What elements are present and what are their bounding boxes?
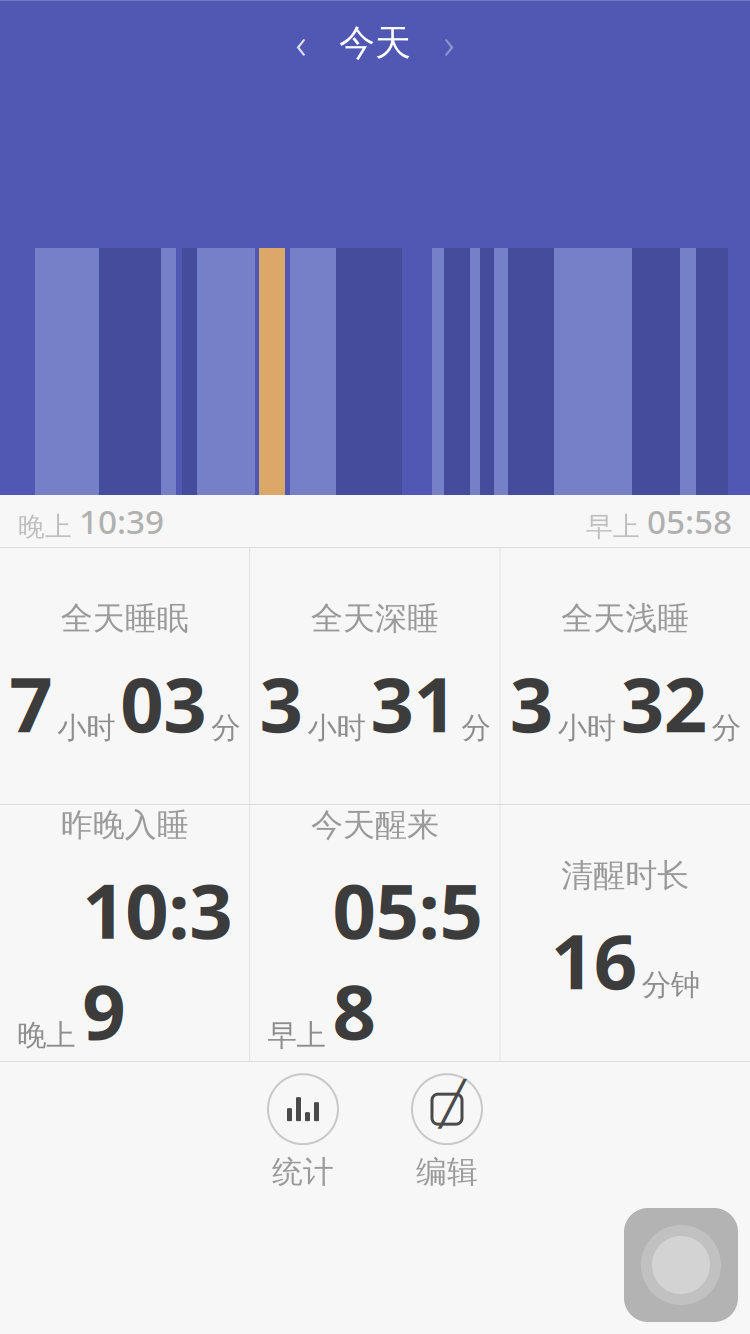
staticText: 05:58 xyxy=(332,859,482,1060)
staticText: 05:58 xyxy=(647,499,732,543)
staticText: ╱ xyxy=(439,1079,465,1128)
staticText: 全天深睡 xyxy=(311,599,439,638)
staticText: 分 xyxy=(211,710,240,746)
staticText: 晚上 xyxy=(18,510,72,543)
staticText: 今天 xyxy=(339,21,411,65)
button[interactable]: ╱ xyxy=(396,1068,498,1197)
staticText: 全天睡眠 xyxy=(61,599,189,638)
staticText: 清醒时长 xyxy=(561,856,689,895)
button[interactable]: Next day xyxy=(421,15,477,71)
staticText: › xyxy=(443,16,454,70)
staticText: 统计 xyxy=(272,1153,334,1191)
button[interactable]: 全天浅睡 xyxy=(501,548,750,804)
staticText: 昨晚入睡 xyxy=(61,805,189,845)
staticText: 10:39 xyxy=(82,859,232,1060)
staticText: 分 xyxy=(461,710,490,746)
staticText: 32 xyxy=(621,652,707,753)
staticText: 今天醒来 xyxy=(311,805,439,845)
staticText: 7 xyxy=(9,652,52,753)
staticText: 晚上 xyxy=(17,1017,75,1053)
staticText: 3 xyxy=(510,652,553,753)
staticText: 10:39 xyxy=(79,499,164,543)
staticText: 03 xyxy=(120,652,206,753)
staticText: 小时 xyxy=(57,710,115,746)
staticText: 早上 xyxy=(267,1017,325,1053)
staticText: 编辑 xyxy=(416,1153,478,1191)
staticText: 小时 xyxy=(558,710,616,746)
button[interactable]: AssistiveTouch xyxy=(624,1208,738,1322)
button[interactable]: Previous day xyxy=(273,15,329,71)
staticText: ‹ xyxy=(295,16,306,70)
staticText: 31 xyxy=(370,652,456,753)
staticText: 分钟 xyxy=(642,967,700,1003)
button[interactable]: 统计 xyxy=(252,1068,354,1197)
button[interactable]: 昨晚入睡 xyxy=(0,805,249,1061)
staticText: 全天浅睡 xyxy=(561,599,689,638)
staticText: 3 xyxy=(259,652,302,753)
button[interactable]: 全天深睡 xyxy=(250,548,500,804)
button[interactable]: 今天醒来 xyxy=(250,805,500,1061)
staticText: 小时 xyxy=(307,710,365,746)
button[interactable]: 全天睡眠 xyxy=(0,548,249,804)
staticText: 早上 xyxy=(586,510,640,543)
button[interactable]: 清醒时长 xyxy=(501,805,750,1061)
staticText: 16 xyxy=(551,909,637,1010)
staticText: 分 xyxy=(712,710,741,746)
